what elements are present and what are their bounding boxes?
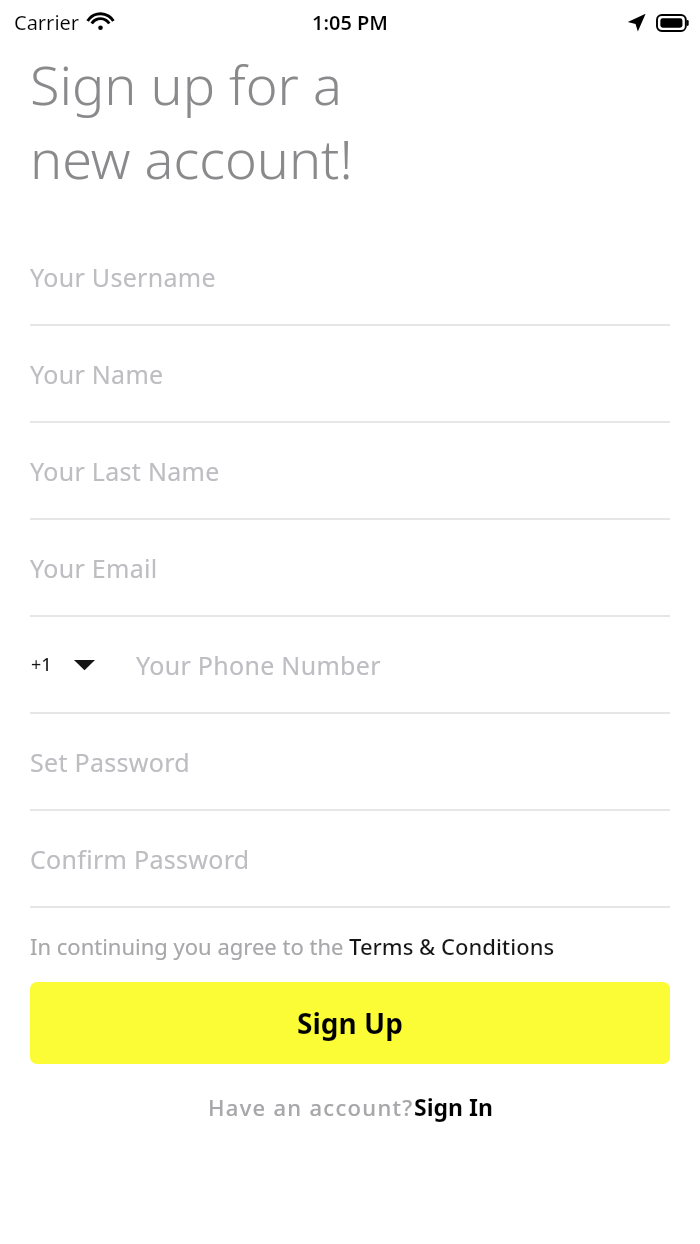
staticText: Confirm Password: [30, 842, 250, 876]
staticText: Your Last Name: [30, 454, 220, 488]
staticText: Set Password: [30, 745, 191, 779]
staticText: Your Username: [30, 260, 216, 294]
staticText: Sign up for a new account!: [30, 47, 353, 195]
button[interactable]: Your Last Name: [30, 423, 670, 520]
button[interactable]: In continuing you agree to the Terms & C…: [30, 931, 670, 961]
staticText: Have an account?: [208, 1092, 414, 1122]
staticText: Your Email: [30, 551, 158, 585]
staticText: Your Name: [30, 357, 164, 391]
staticText: Your Phone Number: [136, 648, 381, 682]
button[interactable]: Confirm Password: [30, 811, 670, 908]
staticText: Sign Up: [297, 1004, 403, 1042]
button[interactable]: Set Password: [30, 714, 670, 811]
button[interactable]: Sign Up: [30, 982, 670, 1064]
button[interactable]: Select country calling code: [30, 640, 96, 689]
staticText: 1:05 PM: [312, 9, 388, 36]
button[interactable]: Sign In: [414, 1091, 493, 1122]
button[interactable]: Your Username: [30, 229, 670, 326]
staticText: Carrier: [14, 9, 80, 36]
button[interactable]: Your Phone Number: [136, 648, 670, 682]
button[interactable]: Your Email: [30, 520, 670, 617]
button[interactable]: Your Name: [30, 326, 670, 423]
staticText: +1: [31, 652, 52, 677]
